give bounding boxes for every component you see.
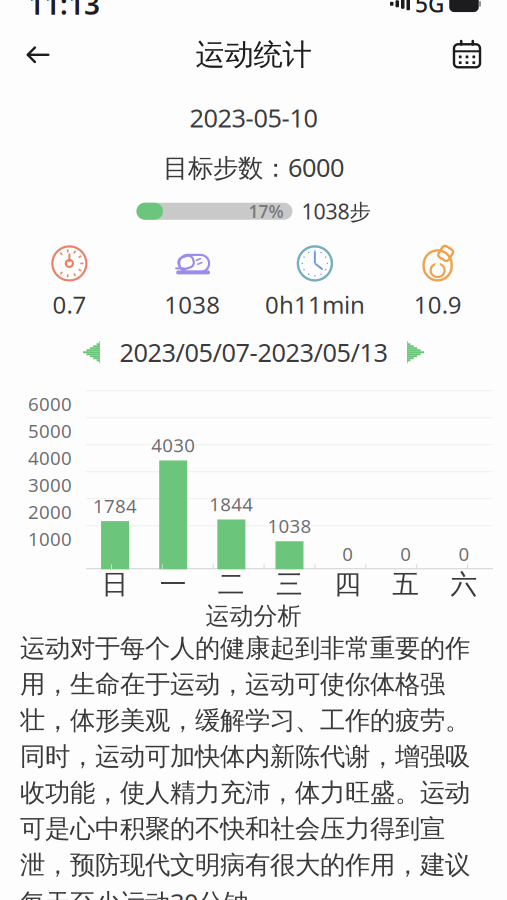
staticText: 1000	[28, 526, 72, 551]
staticText: 二	[218, 568, 245, 601]
staticText: 运动分析	[205, 601, 301, 631]
staticText: 目标步数：6000	[163, 150, 344, 184]
staticText: 0	[342, 541, 353, 566]
staticText: 17%	[248, 200, 283, 223]
button[interactable]: 返回	[14, 31, 62, 79]
staticText: 4030	[151, 433, 195, 457]
staticText: 3000	[28, 472, 72, 497]
staticText: 2023-05-10	[189, 101, 317, 134]
staticText: 日	[102, 568, 129, 601]
staticText: 运动对于每个人的健康起到非常重要的作用，生命在于运动，运动可使你体格强壮，体形美…	[20, 633, 470, 900]
staticText: 6000	[28, 391, 72, 416]
staticText: 三	[276, 568, 303, 601]
button[interactable]: 选择日期	[443, 31, 491, 79]
button[interactable]: 上一周	[69, 332, 113, 372]
button[interactable]: 下一周	[393, 332, 437, 372]
staticText: 11:13	[28, 0, 100, 22]
staticText: 五	[392, 568, 419, 601]
staticText: 1784	[93, 493, 137, 518]
staticText: 0	[458, 541, 469, 566]
staticText: 0.7	[52, 288, 86, 320]
staticText: 10.9	[414, 288, 462, 320]
staticText: 1038	[267, 513, 311, 538]
staticText: 5G	[415, 0, 444, 19]
staticText: 1844	[209, 492, 253, 516]
staticText: 六	[450, 568, 477, 601]
staticText: 5000	[28, 418, 72, 443]
staticText: 0	[400, 541, 411, 566]
staticText: 2000	[28, 499, 72, 524]
staticText: 1038	[164, 288, 220, 320]
staticText: 一	[160, 568, 187, 601]
staticText: 1038步	[301, 197, 370, 225]
staticText: 0h11min	[265, 288, 365, 320]
staticText: 运动统计	[195, 37, 311, 73]
staticText: 2023/05/07-2023/05/13	[119, 335, 387, 369]
staticText: 4000	[28, 445, 72, 470]
staticText: 四	[334, 568, 361, 601]
